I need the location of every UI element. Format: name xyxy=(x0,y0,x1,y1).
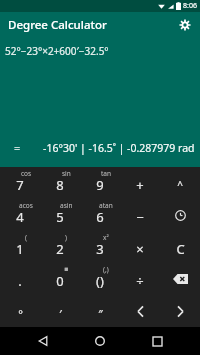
staticText: 3 xyxy=(96,240,104,258)
button[interactable]: ▪ xyxy=(40,263,80,295)
staticText: x² xyxy=(103,233,109,242)
button[interactable]: Home xyxy=(86,327,114,355)
button[interactable]: ″ xyxy=(80,295,120,327)
staticText: ^ xyxy=(177,178,183,192)
staticText: sin xyxy=(62,169,71,178)
button[interactable]: (,) xyxy=(80,263,120,295)
staticText: 52°−23°×2+600′−32.5° xyxy=(5,44,109,58)
button[interactable]: acos xyxy=(0,199,40,231)
button[interactable]: History xyxy=(160,199,200,231)
staticText: ( xyxy=(25,233,27,242)
button[interactable]: atan xyxy=(80,199,120,231)
button[interactable]: tan xyxy=(80,167,120,199)
staticText: -16°30' | -16.5˚ | -0.287979 rad xyxy=(43,141,195,155)
staticText: tan xyxy=(101,169,112,178)
button[interactable]: ) xyxy=(40,231,80,263)
staticText: 8:06 xyxy=(183,1,197,11)
staticText: 0 xyxy=(56,272,64,290)
staticText: 9 xyxy=(96,176,104,194)
button[interactable]: ^ xyxy=(160,167,200,199)
staticText: acos xyxy=(19,201,33,210)
button[interactable]: x² xyxy=(80,231,120,263)
button[interactable]: Move cursor left xyxy=(120,295,160,327)
staticText: ÷ xyxy=(136,272,144,290)
button[interactable]: × xyxy=(120,231,160,263)
staticText: ′ xyxy=(59,306,62,321)
button[interactable]: Back xyxy=(29,327,57,355)
button[interactable]: Recent apps xyxy=(143,327,171,355)
button[interactable]: − xyxy=(120,199,160,231)
staticText: 6 xyxy=(96,208,104,226)
button[interactable]: ′ xyxy=(40,295,80,327)
staticText: ° xyxy=(18,306,23,321)
staticText: ▪ xyxy=(64,265,69,273)
staticText: () xyxy=(96,272,104,290)
button[interactable]: ÷ xyxy=(120,263,160,295)
staticText: (,) xyxy=(103,265,109,274)
staticText: . xyxy=(18,272,22,290)
staticText: + xyxy=(136,176,144,194)
button[interactable]: Backspace xyxy=(160,263,200,295)
button[interactable]: sin xyxy=(40,167,80,199)
staticText: × xyxy=(136,240,144,258)
staticText: 5 xyxy=(56,208,64,226)
staticText: atan xyxy=(99,201,113,210)
button[interactable]: ° xyxy=(0,295,40,327)
staticText: cos xyxy=(21,169,32,178)
staticText: ) xyxy=(65,233,67,242)
staticText: 7 xyxy=(16,176,24,194)
button[interactable]: cos xyxy=(0,167,40,199)
button[interactable]: ( xyxy=(0,231,40,263)
staticText: 4 xyxy=(16,208,24,226)
button[interactable]: . xyxy=(0,263,40,295)
button[interactable]: Move cursor right xyxy=(160,295,200,327)
staticText: 2 xyxy=(56,240,64,258)
staticText: C xyxy=(176,240,185,258)
staticText: 1 xyxy=(16,240,24,258)
button[interactable]: + xyxy=(120,167,160,199)
staticText: − xyxy=(136,208,144,226)
staticText: = xyxy=(14,140,21,155)
button[interactable]: Settings xyxy=(175,15,195,35)
button[interactable]: C xyxy=(160,231,200,263)
button[interactable]: asin xyxy=(40,199,80,231)
staticText: Degree Calculator xyxy=(8,17,107,33)
staticText: 8 xyxy=(56,176,64,194)
staticText: asin xyxy=(60,201,73,210)
staticText: ″ xyxy=(98,306,103,321)
